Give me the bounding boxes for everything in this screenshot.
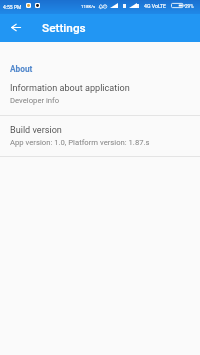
staticText: App version: 1.0, Platform version: 1.87… <box>10 138 150 147</box>
staticText: 29% <box>185 4 194 9</box>
staticText: About <box>10 64 33 74</box>
button[interactable]: Build version <box>0 116 200 156</box>
staticText: 4:55 PM <box>3 4 22 10</box>
staticText: Settings <box>42 21 86 35</box>
button[interactable]: Back <box>6 17 26 37</box>
staticText: 4G VoLTE <box>144 3 167 9</box>
staticText: Developer info <box>10 96 60 105</box>
button[interactable]: Information about application <box>0 76 200 115</box>
staticText: Information about application <box>10 83 130 94</box>
staticText: 118K/s <box>81 4 96 9</box>
staticText: Build version <box>10 125 62 136</box>
